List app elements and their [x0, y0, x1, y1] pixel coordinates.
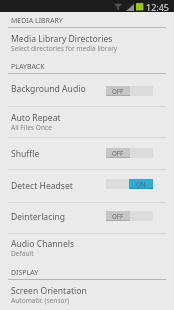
- staticText: Select directories for media library: [11, 44, 118, 53]
- other: Battery: [136, 2, 144, 11]
- button[interactable]: Off: [106, 148, 153, 158]
- staticText: OFF: [112, 87, 124, 95]
- staticText: Shuffle: [11, 148, 40, 160]
- staticText: DISPLAY: [11, 268, 39, 278]
- staticText: OFF: [112, 212, 124, 220]
- button[interactable]: Off: [106, 86, 153, 96]
- button[interactable]: [0, 169, 174, 202]
- staticText: Automatic (sensor): [11, 296, 70, 305]
- staticText: Auto Repeat: [11, 112, 61, 124]
- other: Mobile signal: [126, 4, 134, 11]
- staticText: Detect Headset: [11, 180, 73, 192]
- staticText: All Files Once: [11, 123, 52, 132]
- staticText: PLAYBACK: [11, 62, 45, 72]
- button[interactable]: [0, 137, 174, 169]
- button[interactable]: [0, 106, 174, 137]
- button[interactable]: [0, 73, 174, 106]
- staticText: ON: [136, 180, 146, 188]
- other: Wi-Fi: [114, 2, 122, 10]
- button[interactable]: [0, 27, 174, 73]
- staticText: 12:45: [146, 1, 170, 13]
- button[interactable]: [0, 279, 174, 310]
- staticText: Background Audio: [11, 83, 86, 95]
- button[interactable]: Off: [106, 211, 153, 221]
- staticText: Screen Orientation: [11, 285, 87, 297]
- staticText: Audio Channels: [11, 238, 75, 250]
- button[interactable]: [0, 233, 174, 262]
- staticText: MEDIA LIBRARY: [11, 16, 63, 26]
- staticText: Media Library Directories: [11, 33, 113, 45]
- staticText: Deinterlacing: [11, 211, 66, 223]
- staticText: Default: [11, 249, 34, 258]
- button[interactable]: [0, 202, 174, 233]
- button[interactable]: On: [106, 179, 153, 189]
- staticText: OFF: [112, 149, 124, 157]
